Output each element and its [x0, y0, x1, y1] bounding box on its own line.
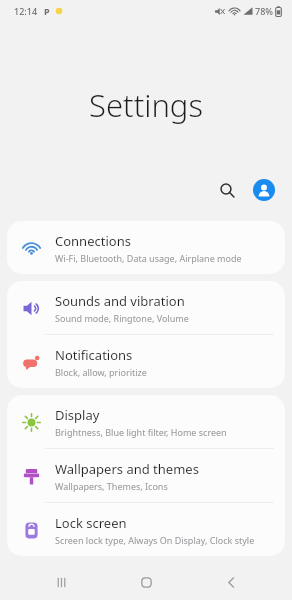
- staticText: Block, allow, prioritize: [55, 366, 147, 378]
- staticText: P: [44, 5, 50, 17]
- staticText: Wi-Fi, Bluetooth, Data usage, Airplane m…: [55, 252, 242, 264]
- button[interactable]: Connections: [7, 221, 285, 274]
- staticText: Settings: [0, 84, 292, 126]
- button[interactable]: Account: [249, 175, 279, 205]
- staticText: Notifications: [55, 346, 133, 364]
- staticText: Brightness, Blue light filter, Home scre…: [55, 426, 227, 438]
- button[interactable]: Search: [212, 175, 242, 205]
- button[interactable]: Lock screen: [7, 503, 285, 556]
- staticText: Lock screen: [55, 514, 127, 532]
- button[interactable]: Back: [207, 564, 255, 600]
- staticText: Wallpapers, Themes, Icons: [55, 480, 168, 492]
- button[interactable]: Notifications: [7, 335, 285, 388]
- staticText: 12:14: [14, 5, 38, 17]
- staticText: Sound mode, Ringtone, Volume: [55, 312, 189, 324]
- staticText: Wallpapers and themes: [55, 460, 199, 478]
- button[interactable]: Display: [7, 395, 285, 448]
- button[interactable]: Sounds and vibration: [7, 281, 285, 334]
- staticText: Connections: [55, 232, 131, 250]
- button[interactable]: Wallpapers and themes: [7, 449, 285, 502]
- staticText: Screen lock type, Always On Display, Clo…: [55, 534, 255, 546]
- staticText: Display: [55, 406, 100, 424]
- staticText: 78%: [255, 5, 273, 17]
- button[interactable]: Recent apps: [37, 564, 85, 600]
- staticText: Sounds and vibration: [55, 292, 185, 310]
- button[interactable]: Home: [122, 564, 170, 600]
